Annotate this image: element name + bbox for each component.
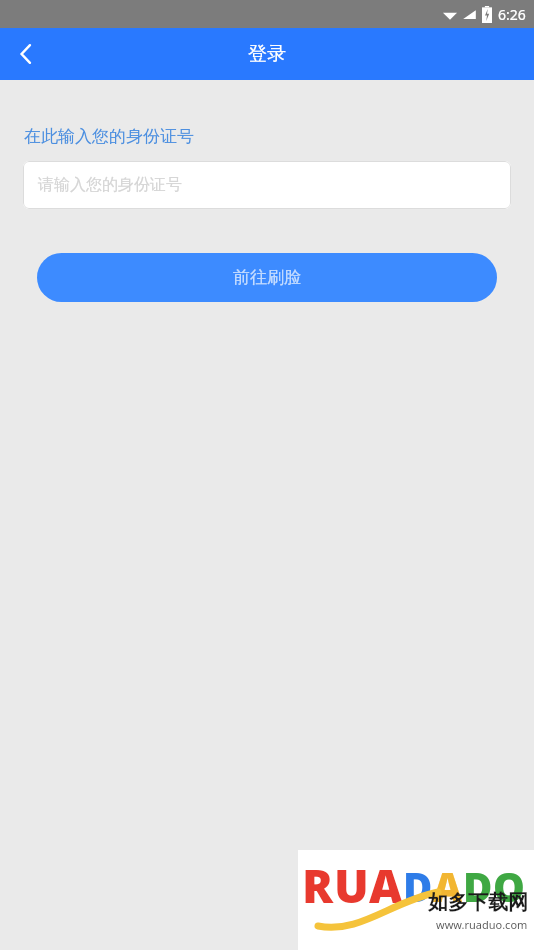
staticText: 6:26	[498, 5, 526, 24]
staticText: 前往刷脸	[233, 267, 301, 288]
staticText: R	[302, 854, 334, 917]
staticText: O	[493, 859, 525, 913]
button[interactable]: 请输入您的身份证号	[23, 161, 511, 209]
staticText: A	[433, 859, 463, 913]
staticText: 如多下载网	[428, 890, 528, 915]
staticText: D	[463, 859, 493, 913]
button[interactable]: 前往刷脸	[37, 253, 497, 302]
staticText: 在此输入您的身份证号	[24, 126, 194, 147]
staticText: www.ruaduo.com	[436, 917, 528, 932]
staticText: U	[334, 854, 369, 917]
staticText: A	[369, 854, 403, 917]
button[interactable]: Back	[0, 28, 52, 80]
staticText: 登录	[248, 42, 286, 66]
staticText: D	[403, 859, 433, 913]
staticText: 请输入您的身份证号	[38, 175, 182, 195]
